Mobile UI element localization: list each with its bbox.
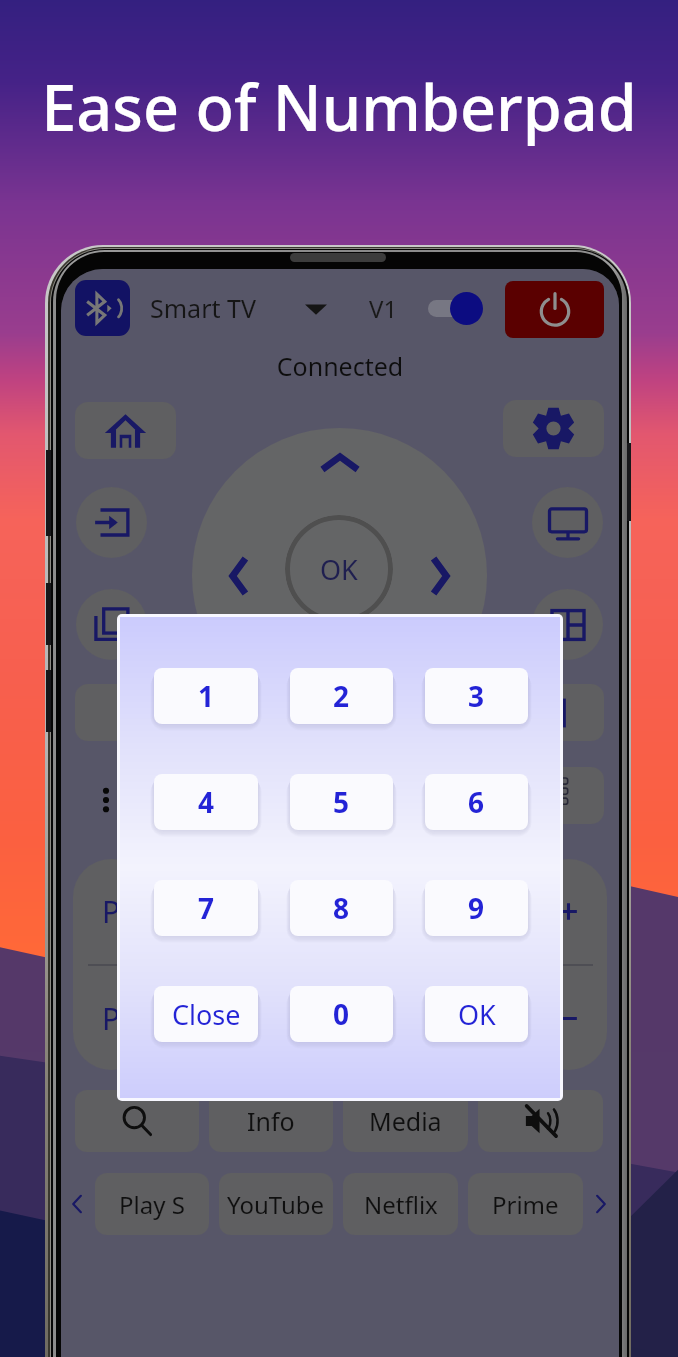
button[interactable]: OK	[425, 986, 528, 1042]
button[interactable]: Connection toggle	[422, 291, 494, 325]
staticText: Prime	[492, 1188, 559, 1221]
button[interactable]: Search	[75, 1090, 199, 1152]
button[interactable]: Volume down	[530, 966, 607, 1070]
button[interactable]: Media	[343, 1090, 468, 1152]
button[interactable]: More options	[87, 767, 125, 833]
button[interactable]: Prime	[468, 1173, 583, 1235]
button[interactable]: OK	[285, 515, 393, 623]
staticText: OK	[458, 996, 496, 1033]
staticText: 3	[468, 677, 485, 715]
button[interactable]: 9	[425, 880, 528, 936]
button[interactable]: Netflix	[343, 1173, 458, 1235]
button[interactable]: Close	[154, 986, 258, 1042]
button[interactable]: Volume up	[530, 859, 607, 963]
staticText: 4	[198, 783, 215, 821]
button[interactable]: Smart TV	[150, 280, 256, 336]
button[interactable]: Numberpad	[503, 767, 604, 824]
staticText: Netflix	[364, 1188, 438, 1221]
staticText: Close	[172, 996, 241, 1033]
button[interactable]: 2	[290, 668, 393, 724]
staticText: Connected	[61, 349, 619, 383]
button[interactable]: YouTube	[219, 1173, 333, 1235]
button[interactable]: 5	[290, 774, 393, 830]
button[interactable]: 7	[154, 880, 258, 936]
staticText: Info	[247, 1104, 295, 1138]
button[interactable]: Mute	[478, 1090, 603, 1152]
staticText: Ease of Numberpad	[41, 64, 637, 150]
button[interactable]: 4	[154, 774, 258, 830]
staticText: P	[102, 891, 121, 932]
staticText: P	[102, 998, 121, 1039]
button[interactable]: Play S	[95, 1173, 209, 1235]
button[interactable]: Left	[214, 551, 264, 601]
staticText: 2	[333, 677, 350, 715]
button[interactable]: Bluetooth	[75, 280, 130, 336]
button[interactable]: Settings	[503, 400, 604, 457]
button[interactable]: Choose device	[301, 294, 331, 324]
button[interactable]: 8	[290, 880, 393, 936]
button[interactable]: 1	[154, 668, 258, 724]
button[interactable]: Apps	[76, 589, 147, 660]
button[interactable]: Next apps	[583, 1173, 617, 1235]
button[interactable]: TV input	[532, 487, 603, 558]
staticText: Smart TV	[150, 291, 256, 325]
button[interactable]: Power	[505, 281, 604, 338]
button[interactable]: Channel up	[73, 859, 150, 963]
staticText: OK	[320, 551, 358, 588]
staticText: 0	[333, 995, 350, 1033]
staticText: YouTube	[227, 1188, 325, 1221]
button[interactable]: Back	[75, 684, 176, 741]
staticText: 8	[333, 889, 350, 927]
staticText: 6	[468, 783, 485, 821]
button[interactable]: 0	[290, 986, 393, 1042]
button[interactable]: Source	[76, 487, 147, 558]
staticText: Media	[369, 1104, 442, 1138]
button[interactable]: Info	[209, 1090, 333, 1152]
staticText: 1	[198, 677, 215, 715]
button[interactable]: Up	[315, 438, 365, 488]
button[interactable]: Home	[75, 402, 176, 459]
staticText: V1	[369, 292, 398, 325]
button[interactable]: Right	[415, 551, 465, 601]
staticText: Play S	[119, 1188, 185, 1221]
button[interactable]: Guide	[532, 589, 603, 660]
button[interactable]: Previous apps	[61, 1173, 95, 1235]
staticText: 5	[333, 783, 350, 821]
button[interactable]: 6	[425, 774, 528, 830]
staticText: 7	[198, 889, 215, 927]
staticText: 9	[468, 889, 485, 927]
button[interactable]: Subtitles	[503, 684, 604, 741]
button[interactable]: 3	[425, 668, 528, 724]
button[interactable]: Channel down	[73, 966, 150, 1070]
